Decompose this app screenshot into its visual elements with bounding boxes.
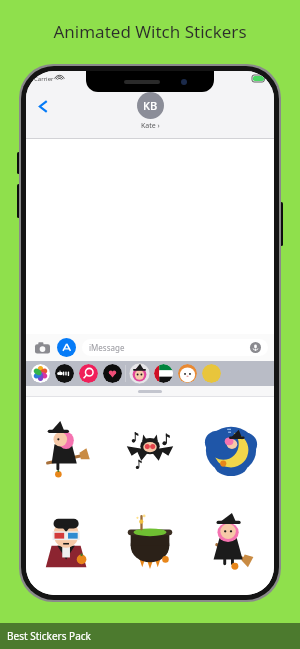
button[interactable]: Witch stickers bbox=[129, 363, 150, 384]
button[interactable]: More stickers bbox=[202, 364, 221, 383]
button[interactable]: Flag stickers bbox=[154, 364, 173, 383]
button[interactable]: Witch on moon sticker bbox=[193, 410, 269, 490]
button[interactable]: Best Stickers Pack bbox=[0, 623, 300, 649]
button[interactable]: Image search bbox=[79, 364, 98, 383]
staticText: Animated Witch Stickers bbox=[53, 20, 247, 43]
button[interactable]: Digital Touch bbox=[103, 364, 122, 383]
staticText: iMessage bbox=[89, 342, 125, 353]
staticText: Best Stickers Pack bbox=[7, 629, 91, 643]
staticText: KB bbox=[143, 98, 158, 113]
button[interactable]: Photos bbox=[31, 364, 50, 383]
staticText: Carrier bbox=[34, 75, 54, 83]
button[interactable]: KB bbox=[137, 92, 164, 131]
button[interactable]: Vampire sticker bbox=[31, 502, 107, 582]
button[interactable]: Camera bbox=[32, 338, 52, 358]
button[interactable]: App Store bbox=[57, 338, 76, 357]
button[interactable]: Back bbox=[30, 93, 56, 119]
button[interactable]: Flying witch sticker bbox=[31, 410, 107, 490]
button[interactable]: Cauldron sticker bbox=[112, 502, 188, 582]
button[interactable]: Apple Pay bbox=[55, 364, 74, 383]
button[interactable]: Seal stickers bbox=[178, 364, 197, 383]
button[interactable]: Musical bat sticker bbox=[112, 410, 188, 490]
button[interactable] bbox=[138, 390, 162, 393]
button[interactable]: iMessage bbox=[82, 339, 268, 356]
button[interactable]: Standing witch sticker bbox=[193, 502, 269, 582]
staticText: Kate › bbox=[141, 121, 160, 131]
